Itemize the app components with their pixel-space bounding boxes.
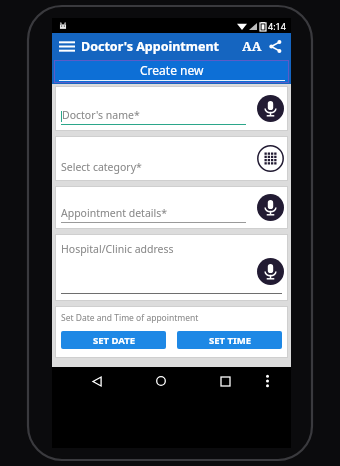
button[interactable]: Select category* — [55, 136, 288, 181]
staticText: Appointment details* — [61, 206, 168, 220]
staticText: Set Date and Time of appointment — [61, 312, 199, 324]
button[interactable]: Appointment details* — [55, 186, 288, 229]
staticText: Select category* — [61, 160, 142, 174]
button[interactable]: Recent apps — [193, 369, 257, 393]
staticText: AA — [242, 37, 262, 55]
staticText: 4:14 — [268, 20, 286, 32]
staticText: Create new — [140, 62, 204, 78]
button[interactable]: Voice input — [257, 95, 284, 122]
button[interactable]: Create new — [55, 61, 288, 82]
button[interactable]: Share — [264, 35, 286, 57]
button[interactable]: Doctor's name* — [55, 86, 288, 131]
button[interactable]: Back — [66, 369, 129, 393]
button[interactable]: More options — [257, 369, 277, 393]
button[interactable]: Voice input — [257, 258, 284, 285]
button[interactable]: Open navigation menu — [57, 36, 77, 56]
button[interactable]: SET DATE — [61, 331, 166, 349]
button[interactable]: Home — [129, 369, 193, 393]
staticText: SET DATE — [93, 334, 135, 347]
button[interactable]: SET TIME — [177, 331, 282, 349]
button[interactable]: Voice input — [257, 194, 284, 221]
staticText: Doctor's Appointment — [81, 38, 219, 55]
button[interactable]: Hospital/Clinic address — [55, 234, 288, 301]
staticText: Doctor's name* — [62, 108, 140, 122]
button[interactable]: Change text size — [240, 34, 264, 58]
button[interactable]: Select category — [257, 145, 284, 172]
staticText: Hospital/Clinic address — [61, 242, 174, 256]
staticText: SET TIME — [209, 334, 251, 347]
